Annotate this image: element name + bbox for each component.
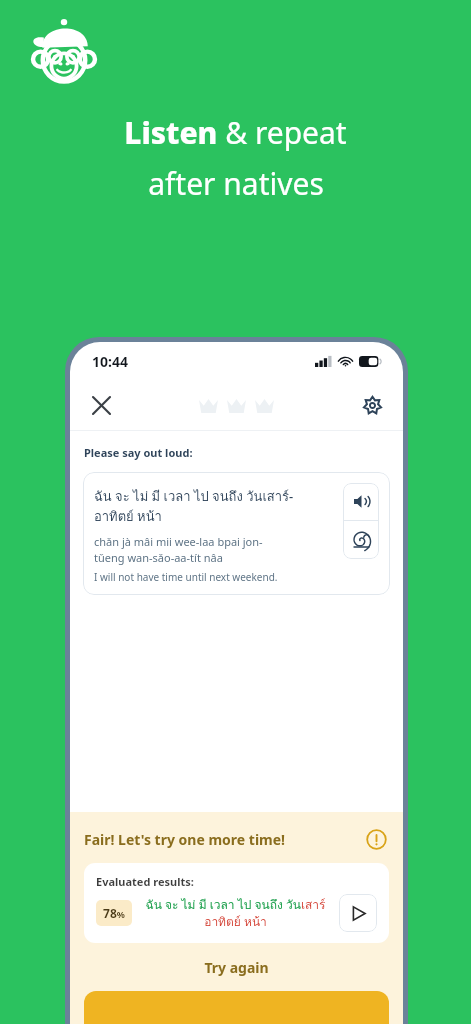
staticText: Listen & repeat	[124, 112, 347, 153]
staticText: I will not have time until next weekend.	[94, 570, 278, 584]
button[interactable]: Play slowly	[343, 521, 379, 559]
staticText: 10:44	[92, 352, 128, 371]
button[interactable]	[84, 991, 389, 1024]
button[interactable]: Close	[84, 388, 118, 422]
staticText: chǎn jà mâi mii wee-laa bpai jon- tǔeng …	[94, 534, 263, 565]
button[interactable]: Settings	[355, 388, 389, 422]
staticText: Evaluated results:	[96, 874, 194, 889]
staticText: Try again	[204, 958, 269, 977]
button[interactable]: Play audio	[343, 483, 379, 520]
staticText: Fair! Let's try one more time!	[84, 830, 363, 849]
staticText: 78%	[103, 905, 125, 921]
staticText: Please say out loud:	[84, 445, 193, 460]
staticText: after natives	[148, 163, 324, 204]
button[interactable]: Try again	[84, 958, 389, 977]
staticText: ฉัน จะ ไม่ มี เวลา ไป จนถึง วันเสาร์ อาท…	[139, 895, 332, 932]
button[interactable]: Info	[363, 826, 389, 852]
button[interactable]: Play recording	[339, 894, 377, 932]
staticText: ฉัน จะ ไม่ มี เวลา ไป จนถึง วันเสาร์- อา…	[94, 486, 294, 527]
